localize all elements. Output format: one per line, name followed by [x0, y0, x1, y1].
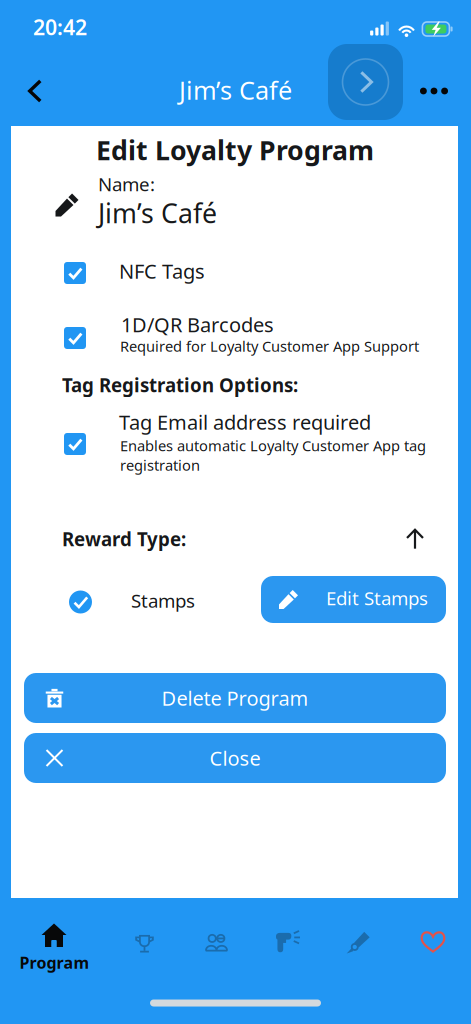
staticText: Close: [209, 745, 260, 771]
staticText: NFC Tags: [119, 258, 205, 284]
button[interactable]: Scanner: [252, 905, 324, 977]
button[interactable]: Customers: [180, 906, 252, 978]
button[interactable]: NFC Tags: [11, 251, 458, 295]
button[interactable]: Back: [8, 60, 62, 122]
staticText: Jim’s Café: [98, 195, 217, 231]
button[interactable]: Collapse reward type: [396, 520, 434, 558]
button[interactable]: Assistive menu: [328, 44, 403, 120]
staticText: Stamps: [131, 588, 195, 613]
staticText: Edit Stamps: [326, 586, 428, 610]
button[interactable]: Edit Stamps: [261, 576, 446, 623]
staticText: Tag Registration Options:: [62, 373, 298, 397]
button[interactable]: Tag Email address required: [11, 406, 458, 482]
button[interactable]: Stamps: [57, 574, 207, 630]
staticText: registration: [120, 455, 200, 475]
staticText: 20:42: [33, 13, 87, 41]
button[interactable]: More options: [410, 65, 458, 117]
staticText: Required for Loyalty Customer App Suppor…: [120, 336, 419, 356]
staticText: 1D/QR Barcodes: [121, 311, 274, 338]
staticText: Name:: [98, 172, 155, 196]
staticText: Tag Email address required: [119, 409, 371, 435]
button[interactable]: Rewards: [108, 907, 180, 979]
button[interactable]: Favourites: [397, 905, 469, 977]
button[interactable]: Design: [324, 905, 396, 977]
button[interactable]: 1D/QR Barcodes: [11, 310, 458, 366]
staticText: Program: [19, 952, 89, 973]
button[interactable]: Close: [24, 733, 446, 783]
staticText: Reward Type:: [62, 527, 186, 551]
staticText: Edit Loyalty Program: [96, 132, 374, 168]
button[interactable]: Delete Program: [24, 673, 446, 723]
staticText: Jim’s Café: [179, 73, 292, 107]
staticText: Delete Program: [161, 685, 308, 711]
staticText: Enables automatic Loyalty Customer App t…: [120, 436, 426, 455]
button[interactable]: Program: [0, 898, 108, 982]
